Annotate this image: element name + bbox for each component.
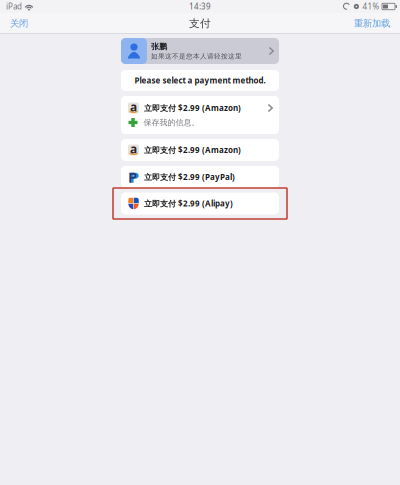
staticText: 41% xyxy=(362,1,379,12)
staticText: a xyxy=(130,141,137,157)
staticText: a xyxy=(130,99,137,115)
staticText: 立即支付 $2.99 (PayPal) xyxy=(144,172,235,182)
staticText: 立即支付 $2.99 (Amazon) xyxy=(144,145,241,155)
button[interactable]: 重新加载 xyxy=(350,14,394,33)
staticText: P xyxy=(128,167,137,187)
staticText: Please select a payment method. xyxy=(134,75,265,86)
staticText: 重新加载 xyxy=(354,18,390,29)
staticText: 立即支付 $2.99 (Alipay) xyxy=(144,198,233,209)
button[interactable]: 立即支付 $2.99 (Alipay) xyxy=(113,188,287,219)
staticText: 支付 xyxy=(189,17,211,30)
button[interactable]: a xyxy=(121,139,279,161)
staticText: 关闭 xyxy=(10,18,28,29)
staticText: 14:39 xyxy=(189,1,211,12)
button[interactable]: 张鹏 xyxy=(121,38,279,64)
staticText: 立即支付 $2.99 (Amazon) xyxy=(144,103,241,113)
staticText: 张鹏 xyxy=(151,42,167,51)
staticText: iPad xyxy=(6,1,22,12)
button[interactable]: 关闭 xyxy=(6,14,32,33)
staticText: P xyxy=(130,167,139,187)
staticText: 保存我的信息。 xyxy=(143,118,199,127)
button[interactable]: a xyxy=(121,96,279,134)
button[interactable]: P xyxy=(121,166,279,188)
staticText: 如果这不是您本人请轻按这里 xyxy=(151,52,242,60)
